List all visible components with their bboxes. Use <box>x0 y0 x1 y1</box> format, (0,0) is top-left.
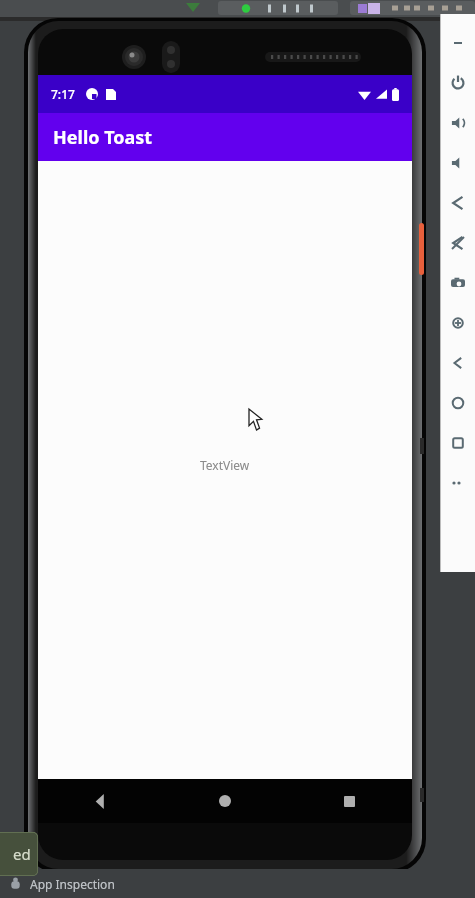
button[interactable]: Home <box>162 779 287 823</box>
button[interactable]: Rotate left <box>445 190 471 216</box>
button[interactable]: Home <box>445 390 471 416</box>
staticText: Hello Toast <box>53 125 153 150</box>
button[interactable]: App Inspection <box>8 869 475 898</box>
button[interactable]: TextView <box>200 457 250 473</box>
button[interactable]: ed <box>0 832 38 876</box>
staticText: 7:17 <box>51 86 75 102</box>
button[interactable]: Recent apps <box>287 779 412 823</box>
button[interactable]: Minimize <box>445 30 471 56</box>
staticText: App Inspection <box>30 876 115 892</box>
staticText: ed <box>13 844 31 864</box>
button[interactable]: Back <box>445 350 471 376</box>
button[interactable]: Power <box>445 70 471 96</box>
button[interactable]: Volume down <box>445 150 471 176</box>
button[interactable]: Volume up <box>445 110 471 136</box>
button[interactable]: Zoom <box>445 310 471 336</box>
button[interactable]: Hello Toast <box>38 113 412 161</box>
button[interactable]: Take screenshot <box>445 270 471 296</box>
button[interactable]: Overview <box>445 430 471 456</box>
button[interactable]: More <box>445 470 471 496</box>
button[interactable]: Rotate right <box>445 230 471 256</box>
button[interactable]: Back <box>38 779 162 823</box>
